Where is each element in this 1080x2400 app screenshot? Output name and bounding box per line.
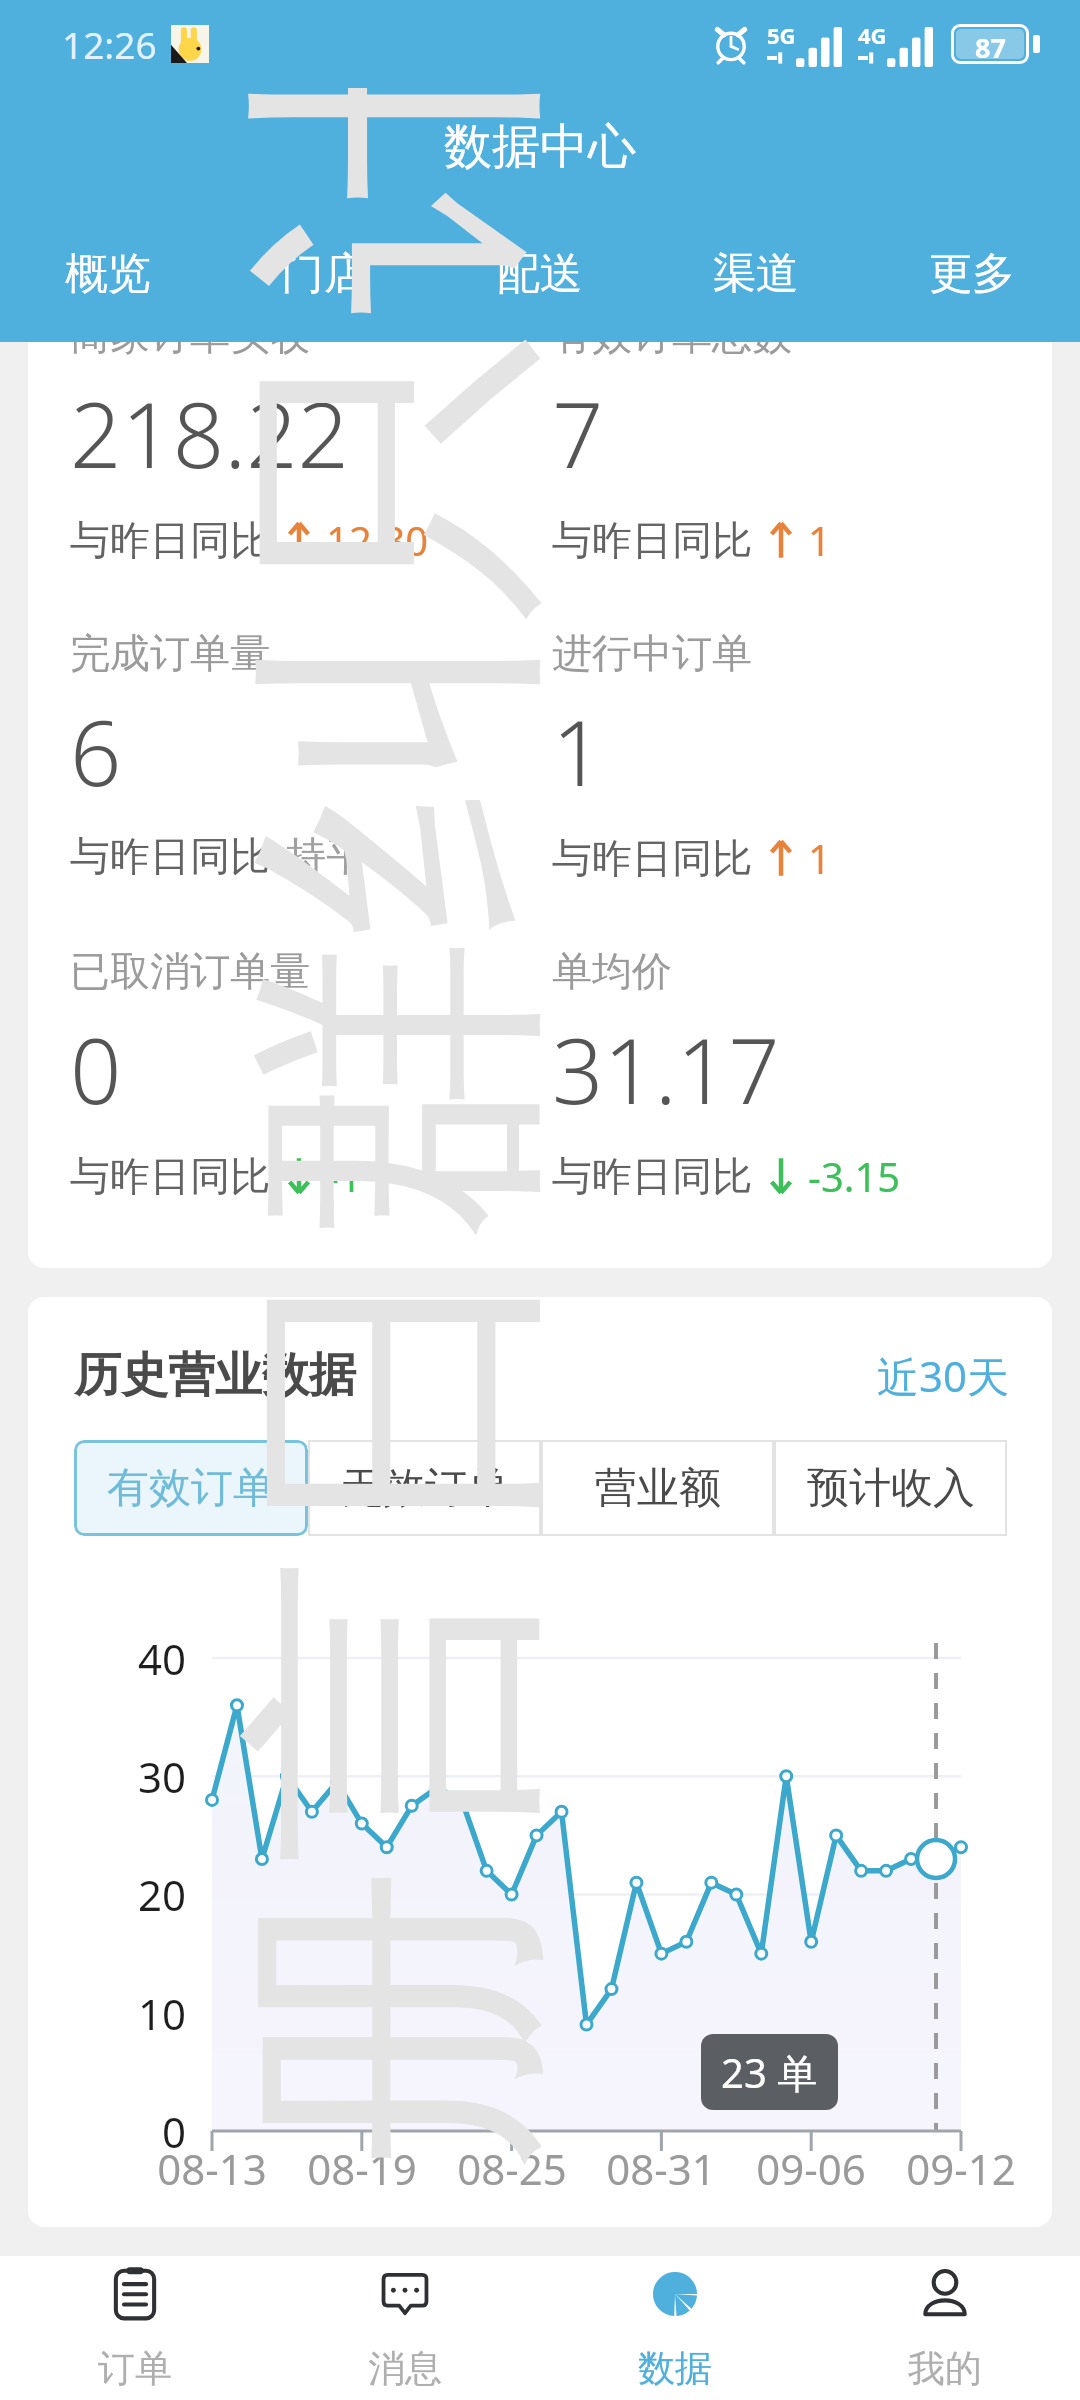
staticText: 与昨日同比 xyxy=(552,515,752,565)
staticText: 门店 xyxy=(281,247,367,301)
staticText: 1 xyxy=(808,513,831,567)
staticText: 预计收入 xyxy=(807,1462,975,1515)
staticText: -1 xyxy=(326,1149,362,1203)
button[interactable]: 已取消订单量 xyxy=(70,946,540,1203)
staticText: 我的 xyxy=(908,2345,982,2392)
button[interactable]: 进行中订单 xyxy=(552,628,1052,885)
staticText: 23 单 xyxy=(721,2045,818,2100)
staticText: 87 xyxy=(975,29,1006,59)
staticText: 0 xyxy=(70,1008,122,1131)
button[interactable]: 消息 xyxy=(270,2256,540,2400)
staticText: -3.15 xyxy=(808,1149,901,1203)
button[interactable]: 我的 xyxy=(810,2256,1080,2400)
staticText: 08-13 xyxy=(132,2140,292,2197)
staticText: 商家订单实收 xyxy=(70,342,310,360)
staticText: 单均价 xyxy=(552,946,672,996)
staticText: 12.30 xyxy=(326,513,429,567)
button[interactable]: 订单 xyxy=(0,2256,270,2400)
button[interactable]: 数据 xyxy=(540,2256,810,2400)
button[interactable]: 有效订单 xyxy=(74,1440,308,1536)
staticText: 数据 xyxy=(638,2345,712,2392)
staticText: 09-06 xyxy=(731,2140,891,2197)
staticText: 与昨日同比 xyxy=(70,515,270,565)
staticText: 1 xyxy=(552,690,604,813)
staticText: 持平 xyxy=(286,831,366,881)
button[interactable]: 近30天 xyxy=(877,1347,1010,1404)
button[interactable]: 配送 xyxy=(432,206,648,342)
button[interactable]: 单均价 xyxy=(552,946,1052,1203)
staticText: 1 xyxy=(808,831,831,885)
staticText: 09-12 xyxy=(881,2140,1041,2197)
staticText: 配送 xyxy=(497,247,583,301)
staticText: 与昨日同比 xyxy=(70,831,270,881)
button[interactable]: 概览 xyxy=(0,206,216,342)
button[interactable]: 完成订单量 xyxy=(70,628,540,881)
staticText: 完成订单量 xyxy=(70,628,270,678)
staticText: 有效订单总数 xyxy=(552,342,792,360)
staticText: 5G xyxy=(767,20,796,50)
staticText: 218.22 xyxy=(70,372,349,495)
staticText: 渠道 xyxy=(713,247,799,301)
staticText: 4G xyxy=(858,20,887,50)
staticText: 31.17 xyxy=(552,1008,780,1131)
staticText: 概览 xyxy=(65,247,151,301)
staticText: 营业额 xyxy=(595,1462,721,1515)
staticText: 更多 xyxy=(929,247,1015,301)
staticText: 近30天 xyxy=(877,1347,1010,1404)
staticText: 历史营业数据 xyxy=(74,1346,356,1405)
staticText: 6 xyxy=(70,690,122,813)
button[interactable]: 预计收入 xyxy=(774,1440,1007,1536)
staticText: 08-25 xyxy=(432,2140,592,2197)
staticText: 数据中心 xyxy=(444,117,636,177)
staticText: 0 xyxy=(76,2103,186,2160)
staticText: 已取消订单量 xyxy=(70,946,310,996)
staticText: 订单 xyxy=(98,2345,172,2392)
staticText: 进行中订单 xyxy=(552,628,752,678)
staticText: 7 xyxy=(552,372,604,495)
staticText: 无效订单 xyxy=(341,1462,509,1515)
button[interactable]: 营业额 xyxy=(541,1440,774,1536)
button[interactable]: 无效订单 xyxy=(308,1440,541,1536)
button[interactable]: 有效订单总数 xyxy=(552,342,1052,567)
staticText: 消息 xyxy=(368,2345,442,2392)
button[interactable]: 更多 xyxy=(864,206,1080,342)
button[interactable]: 门店 xyxy=(216,206,432,342)
staticText: 与昨日同比 xyxy=(552,1151,752,1201)
staticText: 20 xyxy=(76,1866,186,1923)
staticText: 有效订单 xyxy=(107,1462,275,1515)
staticText: 12:26 xyxy=(62,19,157,69)
button[interactable]: 渠道 xyxy=(648,206,864,342)
staticText: 10 xyxy=(76,1985,186,2042)
staticText: 08-19 xyxy=(282,2140,442,2197)
staticText: 40 xyxy=(76,1630,186,1687)
staticText: 08-31 xyxy=(581,2140,741,2197)
button[interactable]: 商家订单实收 xyxy=(70,342,540,567)
staticText: 与昨日同比 xyxy=(70,1151,270,1201)
staticText: 与昨日同比 xyxy=(552,833,752,883)
staticText: 30 xyxy=(76,1748,186,1805)
